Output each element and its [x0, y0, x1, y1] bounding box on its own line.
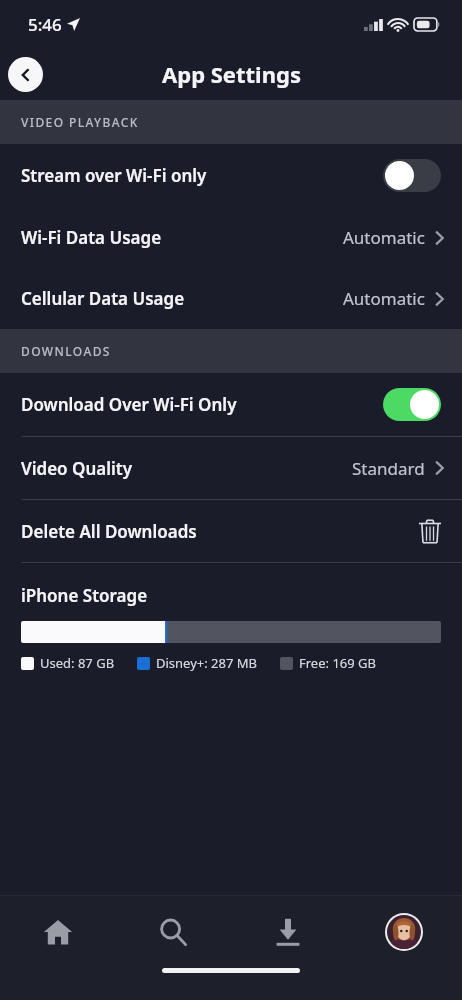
staticText: App Settings — [162, 59, 301, 89]
staticText: DOWNLOADS — [21, 343, 111, 359]
staticText: VIDEO PLAYBACK — [21, 114, 139, 130]
staticText: 5:46 — [28, 13, 62, 36]
staticText: Disney+: 287 MB — [156, 654, 258, 672]
staticText: Cellular Data Usage — [21, 287, 343, 310]
button[interactable]: Downloads — [230, 896, 346, 968]
staticText: Standard — [352, 457, 425, 480]
button[interactable]: Download Over Wi-Fi Only — [0, 373, 462, 436]
staticText: Download Over Wi-Fi Only — [21, 393, 383, 416]
other: Delete all downloads — [419, 519, 441, 544]
staticText: Automatic — [343, 226, 425, 249]
button[interactable]: Profile — [346, 896, 462, 968]
staticText: iPhone Storage — [21, 584, 148, 607]
button[interactable]: Toggle off — [383, 159, 441, 192]
staticText: Free: 169 GB — [299, 654, 376, 672]
staticText: Stream over Wi-Fi only — [21, 164, 383, 187]
button[interactable]: Search — [115, 896, 230, 968]
button[interactable]: Home — [0, 896, 115, 968]
button[interactable]: Video Quality — [0, 437, 462, 499]
staticText: Used: 87 GB — [40, 654, 115, 672]
button[interactable]: Toggle on — [383, 388, 441, 421]
staticText: Automatic — [343, 287, 425, 310]
button[interactable]: Back — [8, 57, 43, 92]
button[interactable]: Cellular Data Usage — [0, 268, 462, 329]
staticText: Wi-Fi Data Usage — [21, 226, 343, 249]
staticText: Video Quality — [21, 457, 352, 480]
button[interactable]: Delete All Downloads — [0, 500, 462, 562]
staticText: Delete All Downloads — [21, 520, 419, 543]
button[interactable]: Wi-Fi Data Usage — [0, 207, 462, 268]
button[interactable]: Stream over Wi-Fi only — [0, 144, 462, 207]
